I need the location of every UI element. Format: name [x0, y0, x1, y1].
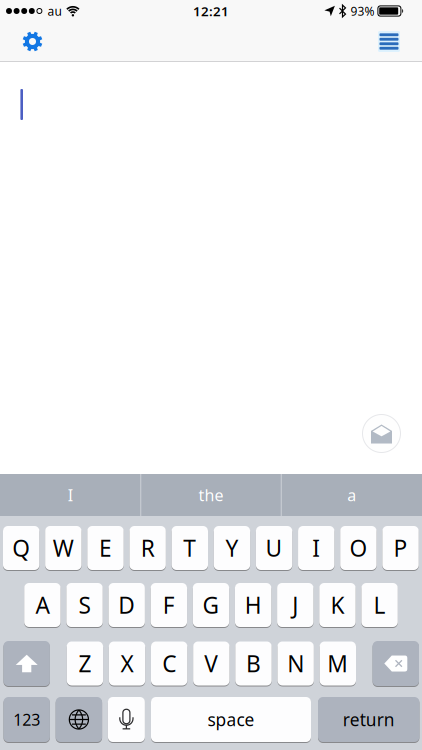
- button[interactable]: I: [298, 526, 334, 570]
- button[interactable]: C: [151, 641, 187, 685]
- button[interactable]: the: [141, 474, 281, 516]
- button[interactable]: P: [382, 526, 419, 570]
- button[interactable]: B: [235, 641, 272, 685]
- staticText: P: [393, 533, 407, 563]
- button[interactable]: L: [361, 583, 398, 627]
- staticText: 93%: [350, 3, 374, 19]
- button[interactable]: Delete: [373, 641, 419, 686]
- staticText: W: [53, 533, 74, 563]
- staticText: K: [330, 590, 344, 620]
- staticText: S: [78, 590, 90, 620]
- button[interactable]: Menu: [378, 21, 422, 62]
- button[interactable]: J: [277, 583, 313, 627]
- staticText: B: [246, 648, 261, 678]
- button[interactable]: Y: [214, 526, 250, 570]
- button[interactable]: V: [193, 641, 230, 685]
- button[interactable]: a: [282, 474, 422, 516]
- button[interactable]: T: [172, 526, 208, 570]
- staticText: V: [204, 648, 218, 678]
- button[interactable]: Shift: [3, 641, 50, 686]
- button[interactable]: O: [340, 526, 377, 570]
- staticText: the: [198, 484, 223, 506]
- button[interactable]: K: [319, 583, 356, 627]
- button[interactable]: Settings: [0, 22, 42, 61]
- staticText: O: [349, 533, 367, 563]
- button[interactable]: Q: [3, 526, 39, 570]
- button[interactable]: D: [108, 583, 145, 627]
- staticText: A: [35, 590, 49, 620]
- staticText: au: [47, 3, 61, 19]
- staticText: space: [207, 708, 254, 731]
- button[interactable]: R: [129, 526, 166, 570]
- button[interactable]: I: [0, 474, 140, 516]
- staticText: I: [68, 484, 73, 506]
- staticText: C: [162, 648, 176, 678]
- staticText: X: [121, 648, 134, 678]
- staticText: 123: [13, 709, 40, 730]
- staticText: Z: [78, 648, 91, 678]
- button[interactable]: G: [193, 583, 229, 627]
- staticText: a: [347, 484, 356, 506]
- staticText: H: [245, 590, 262, 620]
- button[interactable]: Dictate: [108, 697, 145, 742]
- button[interactable]: E: [87, 526, 124, 570]
- button[interactable]: M: [320, 641, 356, 685]
- button[interactable]: Mail: [362, 414, 401, 453]
- staticText: G: [202, 590, 219, 620]
- button[interactable]: A: [24, 583, 61, 627]
- button[interactable]: 123: [3, 697, 50, 742]
- staticText: I: [312, 533, 320, 563]
- staticText: F: [163, 590, 175, 620]
- staticText: Y: [225, 533, 238, 563]
- staticText: return: [343, 708, 395, 731]
- staticText: M: [327, 648, 348, 678]
- button[interactable]: H: [235, 583, 271, 627]
- button[interactable]: N: [277, 641, 314, 685]
- staticText: U: [266, 533, 283, 563]
- staticText: J: [292, 590, 298, 620]
- staticText: 12:21: [193, 2, 229, 20]
- button[interactable]: return: [318, 697, 419, 742]
- button[interactable]: X: [109, 641, 145, 685]
- staticText: Q: [12, 533, 30, 563]
- staticText: L: [374, 590, 386, 620]
- button[interactable]: F: [151, 583, 187, 627]
- staticText: R: [141, 533, 155, 563]
- button[interactable]: U: [256, 526, 292, 570]
- staticText: E: [99, 533, 112, 563]
- button[interactable]: space: [151, 697, 311, 742]
- staticText: N: [287, 648, 304, 678]
- staticText: D: [118, 590, 135, 620]
- button[interactable]: S: [66, 583, 103, 627]
- button[interactable]: Next keyboard: [56, 697, 102, 742]
- button[interactable]: W: [45, 526, 81, 570]
- button[interactable]: Z: [67, 641, 103, 685]
- staticText: T: [183, 533, 196, 563]
